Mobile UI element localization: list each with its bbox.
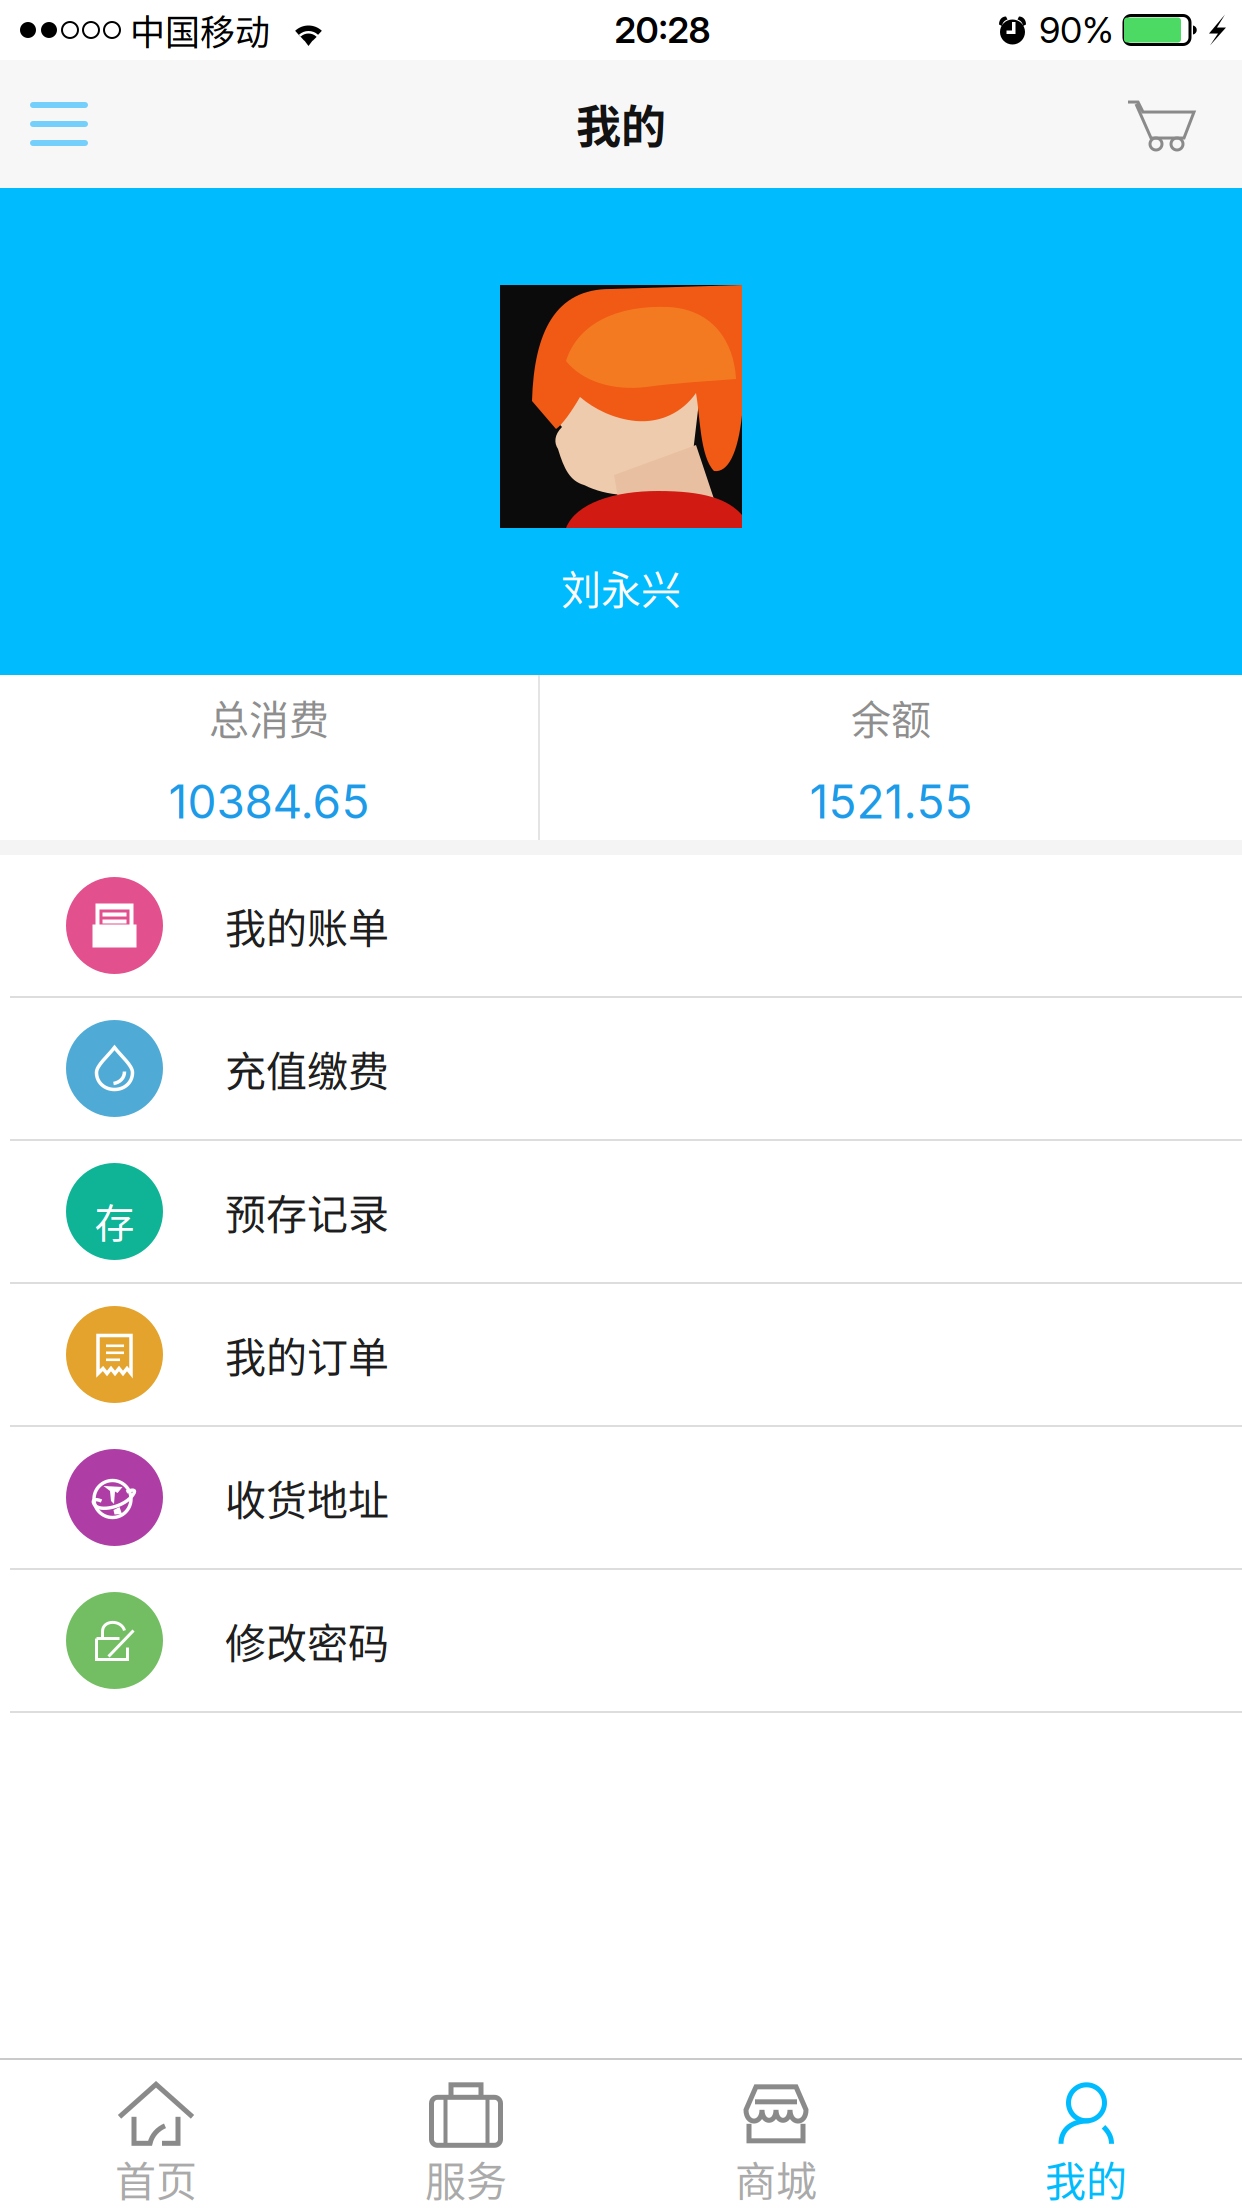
- button[interactable]: 服务: [311, 2060, 621, 2208]
- staticText: 我的账单: [225, 896, 389, 955]
- button[interactable]: 我的账单: [0, 855, 1242, 998]
- staticText: 10384.65: [168, 774, 369, 830]
- button[interactable]: 存: [0, 1141, 1242, 1284]
- staticText: 修改密码: [225, 1611, 389, 1670]
- staticText: 收货地址: [225, 1468, 389, 1527]
- staticText: 预存记录: [225, 1182, 389, 1241]
- staticText: 1521.55: [809, 774, 972, 830]
- button[interactable]: 我的订单: [0, 1284, 1242, 1427]
- button[interactable]: 我的: [931, 2060, 1241, 2208]
- staticText: 我的: [576, 91, 666, 157]
- button[interactable]: 商城: [621, 2060, 931, 2208]
- staticText: 我的: [1045, 2149, 1127, 2208]
- staticText: 商城: [735, 2149, 817, 2208]
- staticText: 总消费: [209, 688, 329, 746]
- staticText: 90%: [1039, 8, 1114, 52]
- button[interactable]: Shopping cart: [1075, 60, 1242, 188]
- button[interactable]: Menu: [0, 60, 136, 188]
- staticText: 20:28: [614, 8, 710, 52]
- staticText: 余额: [851, 688, 931, 746]
- staticText: 服务: [425, 2149, 507, 2208]
- staticText: 充值缴费: [225, 1039, 389, 1098]
- staticText: 首页: [115, 2149, 197, 2208]
- staticText: 刘永兴: [561, 558, 681, 616]
- button[interactable]: 修改密码: [0, 1570, 1242, 1713]
- staticText: 中国移动: [130, 5, 270, 55]
- button[interactable]: 收货地址: [0, 1427, 1242, 1570]
- staticText: 我的订单: [225, 1325, 389, 1384]
- button[interactable]: 首页: [1, 2060, 311, 2208]
- staticText: 存: [94, 1191, 134, 1249]
- button[interactable]: 充值缴费: [0, 998, 1242, 1141]
